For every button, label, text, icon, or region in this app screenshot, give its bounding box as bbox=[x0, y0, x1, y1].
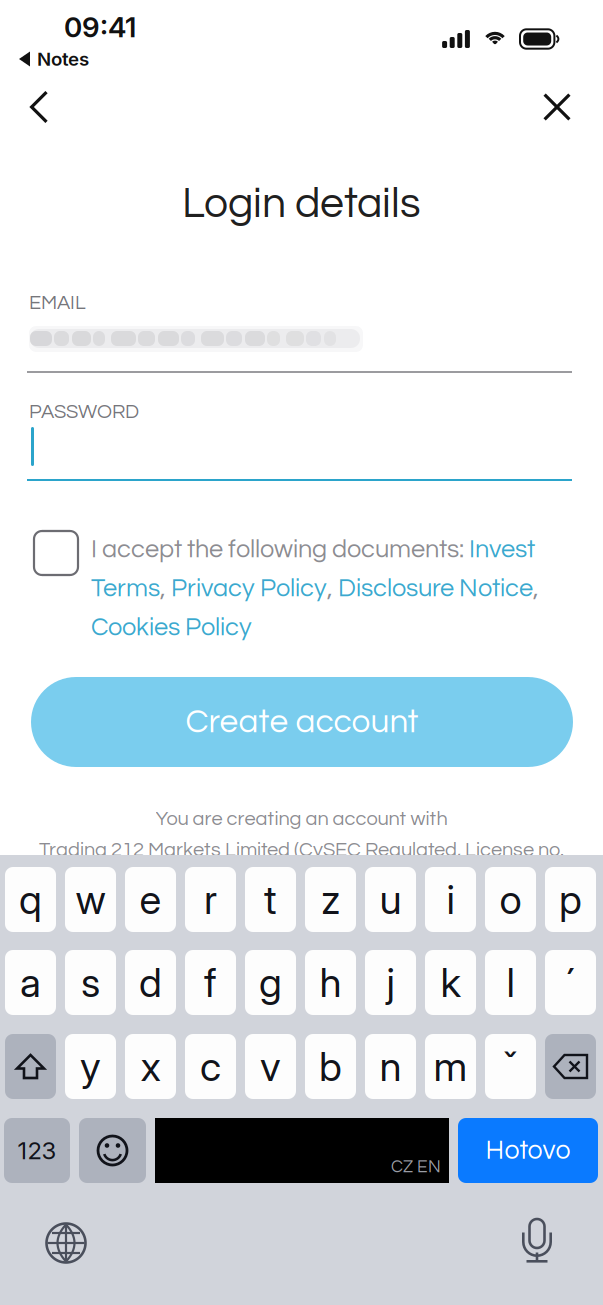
button[interactable]: Notes bbox=[0, 44, 160, 74]
button[interactable]: Hotovo bbox=[458, 1118, 598, 1183]
button[interactable]: Delete bbox=[545, 1034, 596, 1099]
staticText: a bbox=[20, 958, 41, 1007]
button[interactable]: f bbox=[185, 950, 236, 1015]
staticText: Login details bbox=[182, 182, 421, 226]
staticText: Terms bbox=[91, 575, 160, 602]
staticText: e bbox=[139, 875, 161, 924]
staticText: EMAIL bbox=[29, 293, 86, 313]
button[interactable]: l bbox=[485, 950, 536, 1015]
button[interactable]: y bbox=[65, 1034, 116, 1099]
button[interactable]: k bbox=[425, 950, 476, 1015]
staticText: , bbox=[160, 575, 171, 602]
button[interactable]: w bbox=[65, 867, 116, 932]
staticText: p bbox=[559, 875, 582, 924]
button[interactable]: Change keyboard bbox=[46, 1223, 86, 1263]
button[interactable]: n bbox=[365, 1034, 416, 1099]
button[interactable]: v bbox=[245, 1034, 296, 1099]
staticText: f bbox=[204, 958, 217, 1007]
staticText: h bbox=[319, 958, 341, 1007]
button[interactable]: b bbox=[305, 1034, 356, 1099]
button[interactable]: i bbox=[425, 867, 476, 932]
button[interactable]: c bbox=[185, 1034, 236, 1099]
button[interactable]: Close bbox=[526, 77, 588, 137]
staticText: , bbox=[533, 575, 539, 602]
button[interactable]: Back bbox=[8, 77, 70, 137]
staticText: k bbox=[440, 958, 460, 1007]
button[interactable]: q bbox=[5, 867, 56, 932]
staticText: CZ EN bbox=[391, 1158, 441, 1176]
button[interactable]: x bbox=[125, 1034, 176, 1099]
button[interactable]: e bbox=[125, 867, 176, 932]
staticText: v bbox=[260, 1042, 281, 1091]
button[interactable]: j bbox=[365, 950, 416, 1015]
staticText: Trading 212 Markets Limited (CySEC Regul… bbox=[39, 840, 564, 860]
staticText: o bbox=[499, 875, 521, 924]
staticText: Privacy Policy bbox=[171, 575, 327, 602]
button[interactable]: Accept the following documents bbox=[34, 531, 78, 575]
staticText: x bbox=[140, 1042, 160, 1091]
button[interactable]: Create account bbox=[31, 677, 573, 767]
button[interactable]: u bbox=[365, 867, 416, 932]
button[interactable]: h bbox=[305, 950, 356, 1015]
button[interactable]: p bbox=[545, 867, 596, 932]
staticText: y bbox=[80, 1042, 101, 1091]
staticText: z bbox=[321, 875, 340, 924]
staticText: t bbox=[264, 875, 277, 924]
staticText: c bbox=[200, 1042, 221, 1091]
staticText: n bbox=[379, 1042, 401, 1091]
button[interactable]: ˇ bbox=[485, 1034, 536, 1099]
staticText: Cookies Policy bbox=[91, 614, 252, 641]
staticText: I accept the following documents: bbox=[91, 536, 464, 563]
staticText: w bbox=[75, 875, 105, 924]
staticText: s bbox=[81, 958, 100, 1007]
button[interactable]: Shift bbox=[5, 1034, 56, 1099]
staticText: r bbox=[204, 875, 217, 924]
staticText: PASSWORD bbox=[29, 402, 139, 422]
button[interactable]: ´ bbox=[545, 950, 596, 1015]
staticText: l bbox=[506, 958, 514, 1007]
staticText: ˇ bbox=[502, 1042, 518, 1091]
staticText: d bbox=[139, 958, 162, 1007]
button[interactable]: t bbox=[245, 867, 296, 932]
staticText: ´ bbox=[565, 958, 575, 1007]
button[interactable]: 123 bbox=[4, 1118, 70, 1183]
button[interactable]: o bbox=[485, 867, 536, 932]
staticText: Notes bbox=[37, 48, 89, 70]
staticText: You are creating an account with bbox=[155, 809, 447, 829]
staticText: i bbox=[446, 875, 454, 924]
staticText: 09:41 bbox=[64, 10, 136, 44]
staticText: q bbox=[19, 875, 42, 924]
button[interactable]: m bbox=[425, 1034, 476, 1099]
staticText: Hotovo bbox=[485, 1137, 570, 1164]
button[interactable]: r bbox=[185, 867, 236, 932]
button[interactable]: s bbox=[65, 950, 116, 1015]
button[interactable]: g bbox=[245, 950, 296, 1015]
staticText: j bbox=[386, 958, 394, 1007]
staticText: 123 bbox=[17, 1136, 56, 1165]
staticText: g bbox=[259, 958, 282, 1007]
button[interactable]: a bbox=[5, 950, 56, 1015]
staticText: Create account bbox=[185, 705, 418, 739]
button[interactable]: CZ EN bbox=[155, 1118, 449, 1183]
staticText: u bbox=[379, 875, 401, 924]
staticText: Invest bbox=[469, 536, 535, 563]
staticText: b bbox=[319, 1042, 342, 1091]
button[interactable]: z bbox=[305, 867, 356, 932]
staticText: Disclosure Notice bbox=[338, 575, 533, 602]
staticText: m bbox=[433, 1042, 467, 1091]
button[interactable]: Emoji bbox=[79, 1118, 146, 1183]
button[interactable]: Dictate bbox=[522, 1219, 552, 1264]
staticText: , bbox=[327, 575, 338, 602]
button[interactable]: d bbox=[125, 950, 176, 1015]
